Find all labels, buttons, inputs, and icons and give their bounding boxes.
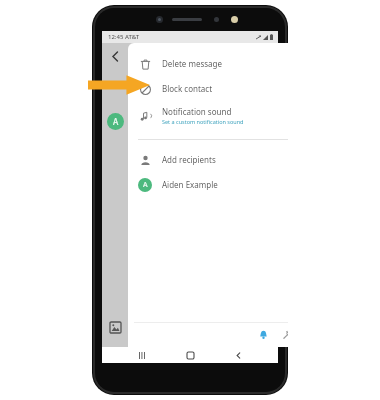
button[interactable]: A <box>128 172 288 197</box>
button[interactable]: Add recipients <box>128 147 288 172</box>
staticText: Delete message <box>162 58 222 69</box>
button[interactable]: Home <box>182 347 198 363</box>
button[interactable]: Notification sound <box>128 101 288 130</box>
staticText: Aiden Example <box>162 179 218 190</box>
staticText: Add recipients <box>162 154 216 165</box>
button[interactable]: Delete message <box>128 51 288 76</box>
button[interactable]: Pin <box>278 325 288 343</box>
staticText: Notification sound <box>162 106 232 117</box>
staticText: A <box>113 116 119 127</box>
button[interactable]: Block contact <box>128 76 288 101</box>
staticText: Set a custom notification sound <box>162 118 244 125</box>
button[interactable]: Back <box>230 347 246 363</box>
button[interactable]: Recents <box>134 347 150 363</box>
staticText: 12:45 AT&T <box>108 33 140 41</box>
button[interactable]: Attach image <box>106 318 124 336</box>
staticText: A <box>143 180 148 190</box>
button[interactable]: Back <box>105 46 125 66</box>
staticText: Block contact <box>162 83 213 94</box>
button[interactable]: Notifications <box>254 325 272 343</box>
